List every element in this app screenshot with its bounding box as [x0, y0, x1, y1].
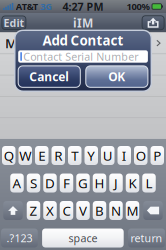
staticText: I — [122, 147, 127, 164]
staticText: iIM — [73, 15, 93, 31]
button[interactable]: A — [10, 173, 24, 192]
button[interactable]: P — [150, 146, 164, 165]
button[interactable]: Q — [2, 146, 15, 165]
staticText: Edit — [3, 16, 24, 30]
button[interactable]: Cancel — [18, 66, 80, 87]
button[interactable]: J — [109, 173, 123, 192]
staticText: L — [145, 174, 152, 192]
staticText: Y — [87, 147, 95, 164]
button[interactable]: U — [101, 146, 114, 165]
button[interactable]: W — [18, 146, 32, 165]
staticText: U — [103, 147, 113, 164]
staticText: 100% — [126, 0, 149, 13]
staticText: space — [68, 231, 97, 245]
button[interactable]: M — [126, 201, 139, 220]
staticText: .?123 — [6, 231, 32, 245]
staticText: R — [54, 147, 62, 164]
button[interactable]: D — [43, 173, 57, 192]
button[interactable]: return — [128, 228, 165, 247]
button[interactable]: Share — [142, 16, 164, 30]
staticText: Contact Serial Number — [23, 49, 138, 64]
button[interactable] — [0, 75, 166, 97]
button[interactable]: L — [142, 173, 156, 192]
staticText: Z — [29, 202, 37, 219]
button[interactable]: MaxTheMan — [0, 33, 166, 54]
button[interactable]: V — [76, 201, 90, 220]
button[interactable]: R — [51, 146, 65, 165]
button[interactable]: N — [109, 201, 123, 220]
staticText: B — [95, 202, 104, 219]
button[interactable]: OK — [86, 66, 148, 87]
button[interactable]: Y — [84, 146, 98, 165]
button[interactable]: Edit — [2, 16, 26, 29]
button[interactable]: C — [60, 201, 73, 220]
staticText: V — [79, 202, 87, 219]
staticText: H — [94, 174, 104, 192]
button[interactable]: B — [93, 201, 106, 220]
staticText: A — [12, 174, 21, 192]
staticText: N — [111, 202, 121, 219]
button[interactable]: K — [126, 173, 139, 192]
button[interactable]: H — [93, 173, 106, 192]
staticText: J — [114, 174, 118, 192]
button[interactable]: Z — [27, 201, 40, 220]
staticText: Add Contact — [42, 31, 123, 49]
button[interactable] — [143, 201, 163, 220]
staticText: Q — [4, 147, 14, 164]
button[interactable]: G — [76, 173, 90, 192]
staticText: F — [63, 174, 70, 192]
staticText: W — [19, 147, 31, 164]
button[interactable] — [3, 201, 23, 220]
staticText: OK — [108, 69, 125, 84]
button[interactable]: O — [134, 146, 147, 165]
button[interactable]: F — [60, 173, 73, 192]
staticText: O — [136, 147, 146, 164]
staticText: return — [130, 231, 162, 245]
staticText: D — [45, 174, 55, 192]
staticText: X — [46, 202, 54, 219]
staticText: T — [71, 147, 78, 164]
staticText: Cancel — [29, 69, 69, 84]
staticText: 3G — [40, 0, 52, 13]
staticText: C — [62, 202, 70, 219]
staticText: K — [128, 174, 136, 192]
staticText: G — [78, 174, 88, 192]
staticText: S — [30, 174, 37, 192]
staticText: P — [153, 147, 161, 164]
button[interactable]: T — [68, 146, 81, 165]
staticText: M — [126, 202, 138, 219]
staticText: AT&T — [16, 0, 38, 13]
button[interactable]: X — [43, 201, 57, 220]
button[interactable]: E — [35, 146, 48, 165]
button[interactable]: space — [42, 228, 124, 247]
button[interactable]: I — [117, 146, 131, 165]
staticText: MaxTheMan — [5, 34, 86, 52]
button[interactable] — [0, 54, 166, 75]
staticText: 4:27 PM — [62, 0, 103, 14]
button[interactable]: .?123 — [1, 228, 38, 247]
staticText: E — [38, 147, 45, 164]
button[interactable]: S — [27, 173, 40, 192]
